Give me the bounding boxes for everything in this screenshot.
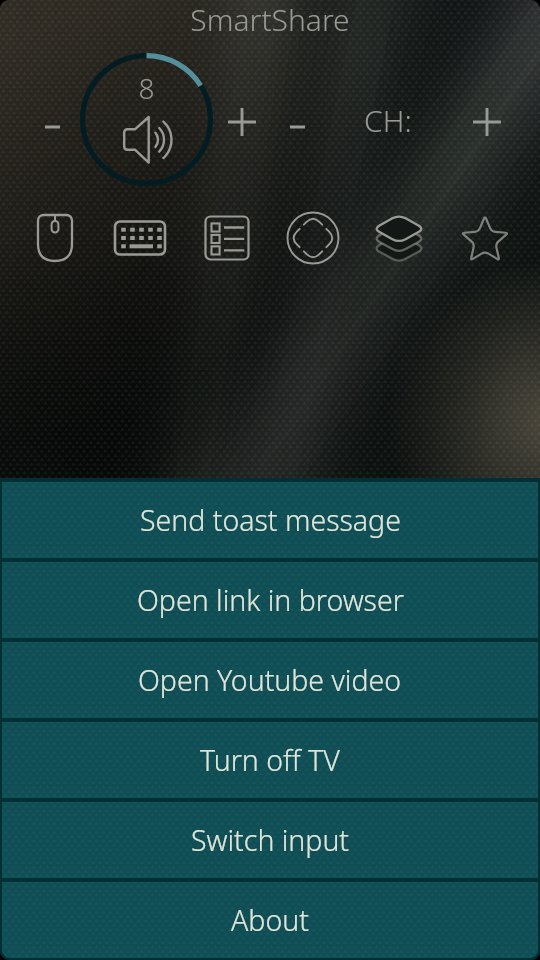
- button[interactable]: D-pad: [281, 206, 345, 270]
- staticText: SmartShare: [0, 0, 540, 40]
- staticText: CH:: [364, 100, 412, 141]
- button[interactable]: Switch input: [2, 802, 538, 878]
- button[interactable]: Mouse: [23, 206, 87, 270]
- staticText: About: [231, 901, 309, 940]
- staticText: Open Youtube video: [138, 661, 402, 700]
- button[interactable]: Volume level: [80, 53, 213, 186]
- button[interactable]: Send toast message: [2, 482, 538, 558]
- staticText: Switch input: [191, 821, 350, 860]
- staticText: Open link in browser: [137, 581, 404, 620]
- button[interactable]: Open link in browser: [2, 562, 538, 638]
- button[interactable]: Layers: [367, 206, 431, 270]
- button[interactable]: Open Youtube video: [2, 642, 538, 718]
- button[interactable]: Keyboard: [108, 206, 172, 270]
- button[interactable]: Channel list: [195, 206, 259, 270]
- button[interactable]: Turn off TV: [2, 722, 538, 798]
- staticText: Turn off TV: [200, 741, 340, 780]
- staticText: 8: [80, 69, 213, 107]
- button[interactable]: Volume down: [18, 99, 86, 155]
- staticText: Send toast message: [140, 501, 401, 540]
- button[interactable]: Channel down: [267, 99, 327, 155]
- button[interactable]: Volume up: [210, 94, 274, 150]
- button[interactable]: Favorites: [453, 206, 517, 270]
- button[interactable]: Channel up: [455, 94, 519, 150]
- button[interactable]: About: [2, 882, 538, 958]
